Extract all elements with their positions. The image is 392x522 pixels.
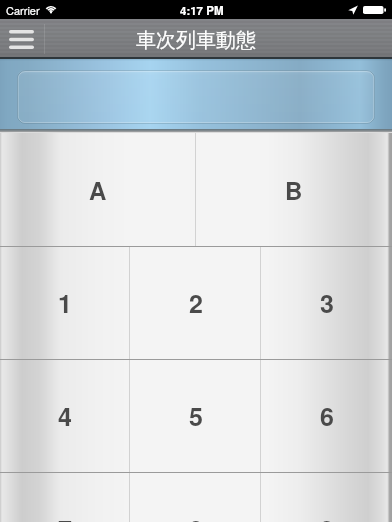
staticText: 2 — [189, 285, 203, 321]
staticText: B — [285, 173, 303, 207]
button[interactable]: 2 — [130, 247, 261, 359]
staticText: 4 — [58, 398, 72, 434]
staticText: 3 — [320, 285, 334, 321]
staticText: 5 — [189, 398, 203, 434]
button[interactable]: 1 — [0, 247, 130, 359]
button[interactable]: 9 — [261, 473, 392, 522]
button[interactable] — [17, 70, 375, 124]
button[interactable]: 6 — [261, 360, 392, 472]
staticText: 1 — [58, 285, 72, 321]
button[interactable]: 7 — [0, 473, 130, 522]
button[interactable]: 8 — [130, 473, 261, 522]
button[interactable]: A — [0, 133, 196, 246]
button[interactable]: 5 — [130, 360, 261, 472]
staticText: 車次列車動態 — [136, 28, 256, 53]
button[interactable]: 3 — [261, 247, 392, 359]
staticText: A — [89, 173, 107, 207]
button[interactable]: B — [196, 133, 392, 246]
staticText: 4:17 PM — [180, 2, 224, 18]
staticText: Carrier — [6, 2, 40, 18]
staticText: 8 — [189, 511, 203, 522]
button[interactable]: 4 — [0, 360, 130, 472]
staticText: 7 — [58, 511, 72, 522]
staticText: 9 — [320, 511, 334, 522]
button[interactable]: Menu — [0, 19, 44, 59]
staticText: 6 — [320, 398, 334, 434]
